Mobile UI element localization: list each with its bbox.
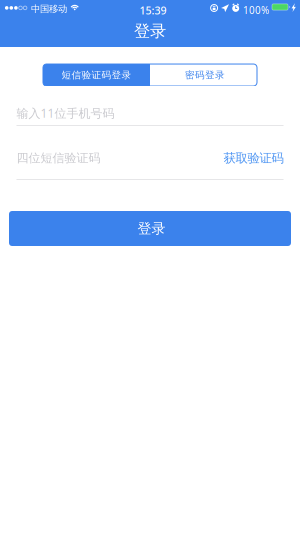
staticText: 短信验证码登录 (61, 69, 131, 81)
button[interactable]: 登录 (9, 211, 291, 246)
staticText: 100% (243, 4, 269, 17)
staticText: 获取验证码 (223, 150, 283, 166)
staticText: 15:39 (139, 3, 166, 17)
button[interactable]: 输入11位手机号码 (16, 101, 283, 125)
staticText: 中国移动 (31, 3, 67, 15)
staticText: 四位短信验证码 (16, 151, 100, 165)
button[interactable]: 短信验证码登录 (43, 64, 150, 86)
button[interactable]: 四位短信验证码 (16, 147, 100, 169)
staticText: 密码登录 (185, 69, 225, 81)
button[interactable]: 密码登录 (150, 64, 257, 86)
staticText: 登录 (134, 21, 166, 41)
staticText: 输入11位手机号码 (16, 105, 114, 121)
staticText: 登录 (137, 220, 165, 237)
button[interactable]: 获取验证码 (223, 147, 283, 169)
